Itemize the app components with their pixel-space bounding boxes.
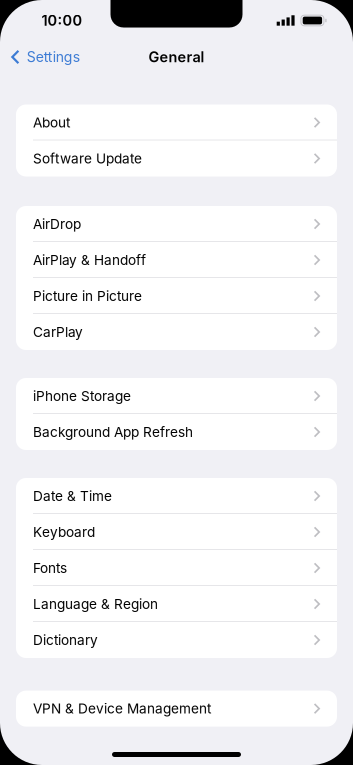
staticText: Date & Time <box>33 488 112 504</box>
button[interactable]: About <box>16 104 337 140</box>
button[interactable]: Date & Time <box>16 478 337 514</box>
staticText: 10:00 <box>41 12 82 29</box>
staticText: Picture in Picture <box>33 288 142 304</box>
staticText: Software Update <box>33 150 142 167</box>
staticText: AirPlay & Handoff <box>33 252 146 268</box>
button[interactable]: AirPlay & Handoff <box>16 242 337 278</box>
button[interactable]: VPN & Device Management <box>16 691 337 727</box>
staticText: Settings <box>27 48 80 65</box>
staticText: Dictionary <box>33 632 98 648</box>
button[interactable]: iPhone Storage <box>16 378 337 414</box>
staticText: CarPlay <box>33 324 83 340</box>
staticText: Fonts <box>33 560 67 576</box>
staticText: Keyboard <box>33 524 95 540</box>
button[interactable]: Settings <box>0 48 80 65</box>
button[interactable]: AirDrop <box>16 206 337 242</box>
staticText: AirDrop <box>33 216 81 232</box>
staticText: VPN & Device Management <box>33 700 211 717</box>
staticText: iPhone Storage <box>33 388 131 404</box>
button[interactable]: Background App Refresh <box>16 414 337 450</box>
button[interactable]: Picture in Picture <box>16 278 337 314</box>
staticText: General <box>148 48 204 66</box>
button[interactable]: Language & Region <box>16 586 337 622</box>
button[interactable]: Fonts <box>16 550 337 586</box>
button[interactable]: Keyboard <box>16 514 337 550</box>
staticText: About <box>33 114 70 131</box>
staticText: Language & Region <box>33 596 158 612</box>
button[interactable]: CarPlay <box>16 314 337 350</box>
button[interactable]: Dictionary <box>16 622 337 658</box>
staticText: Background App Refresh <box>33 424 193 440</box>
button[interactable]: Software Update <box>16 140 337 176</box>
